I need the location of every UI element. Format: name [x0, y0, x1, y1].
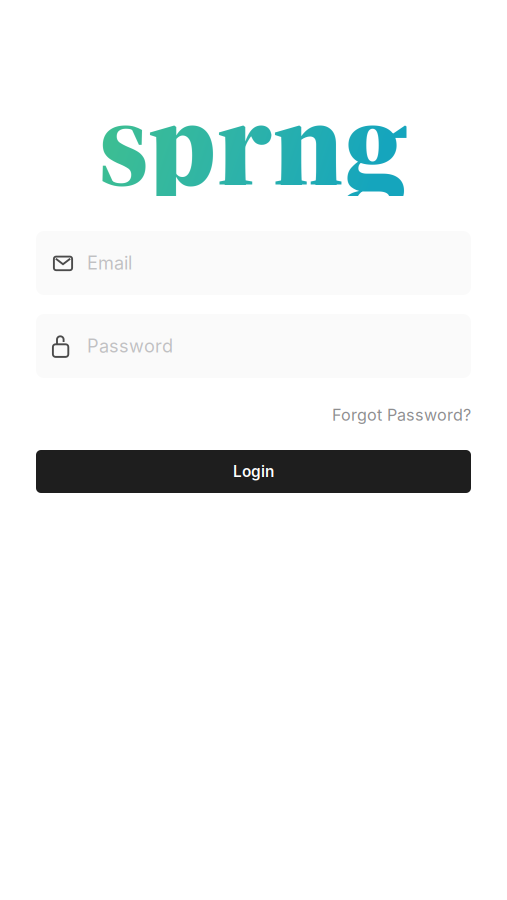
staticText: Email	[87, 252, 132, 274]
button[interactable]: Forgot Password?	[36, 403, 471, 427]
staticText: Password	[87, 335, 173, 357]
staticText: Forgot Password?	[332, 405, 471, 425]
button[interactable]: Login	[36, 450, 471, 493]
staticText: Login	[233, 462, 274, 481]
